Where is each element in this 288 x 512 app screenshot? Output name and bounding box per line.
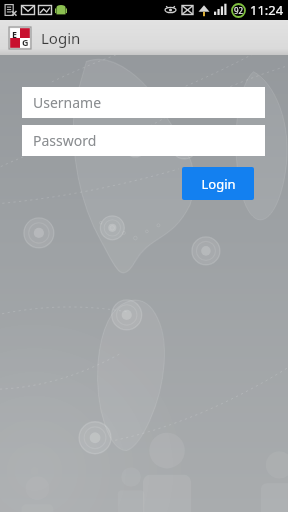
- staticText: Username: [33, 93, 102, 112]
- staticText: Login: [41, 28, 81, 48]
- button[interactable]: Username: [22, 87, 265, 118]
- staticText: Login: [201, 175, 236, 193]
- button[interactable]: Login: [182, 167, 254, 200]
- button[interactable]: Password: [22, 125, 265, 156]
- staticText: Password: [33, 131, 97, 150]
- staticText: G: [22, 36, 29, 48]
- staticText: 11:24: [250, 1, 284, 19]
- staticText: E: [12, 28, 18, 40]
- staticText: 92: [234, 5, 244, 16]
